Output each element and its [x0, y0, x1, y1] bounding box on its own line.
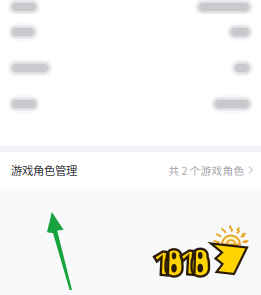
staticText: 共 2 个游戏角色 — [168, 162, 244, 178]
button[interactable]: 游戏角色管理 — [0, 152, 261, 188]
staticText: 游戏角色管理 — [11, 162, 77, 178]
